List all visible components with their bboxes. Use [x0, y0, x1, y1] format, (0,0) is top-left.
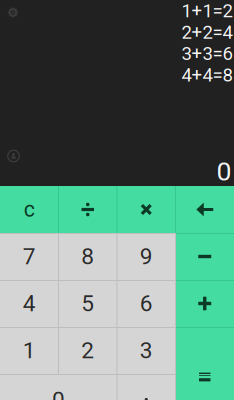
- staticText: 2: [81, 337, 94, 364]
- button[interactable]: Backspace: [175, 186, 234, 233]
- button[interactable]: 0: [0, 374, 117, 400]
- staticText: 9: [140, 243, 153, 270]
- staticText: 7: [23, 243, 36, 270]
- staticText: 5: [81, 290, 94, 317]
- staticText: 3: [140, 337, 153, 364]
- button[interactable]: 8: [58, 233, 117, 280]
- staticText: 6: [140, 290, 153, 317]
- button[interactable]: Clear: [0, 186, 58, 233]
- button[interactable]: Plus: [175, 280, 234, 327]
- button[interactable]: Settings: [0, 0, 25, 25]
- button[interactable]: 7: [0, 233, 58, 280]
- staticText: 0: [52, 387, 65, 400]
- staticText: 4: [23, 290, 36, 317]
- button[interactable]: Account: [0, 143, 26, 169]
- button[interactable]: 4: [0, 280, 58, 327]
- button[interactable]: Equals: [175, 327, 234, 400]
- button[interactable]: 3: [117, 327, 175, 374]
- button[interactable]: 9: [117, 233, 175, 280]
- staticText: 3+3=6: [181, 43, 232, 65]
- button[interactable]: Divide: [58, 186, 117, 233]
- button[interactable]: 6: [117, 280, 175, 327]
- button[interactable]: Multiply: [117, 186, 175, 233]
- button[interactable]: Decimal point: [117, 374, 175, 400]
- staticText: 1: [23, 337, 36, 364]
- staticText: 2+2=4: [181, 21, 232, 43]
- button[interactable]: Minus: [175, 233, 234, 280]
- staticText: c: [24, 197, 35, 222]
- staticText: 8: [81, 243, 94, 270]
- button[interactable]: 1: [0, 327, 58, 374]
- staticText: 4+4=8: [181, 64, 232, 86]
- button[interactable]: 2: [58, 327, 117, 374]
- button[interactable]: 5: [58, 280, 117, 327]
- staticText: 0: [216, 156, 231, 187]
- staticText: 1+1=2: [181, 0, 232, 22]
